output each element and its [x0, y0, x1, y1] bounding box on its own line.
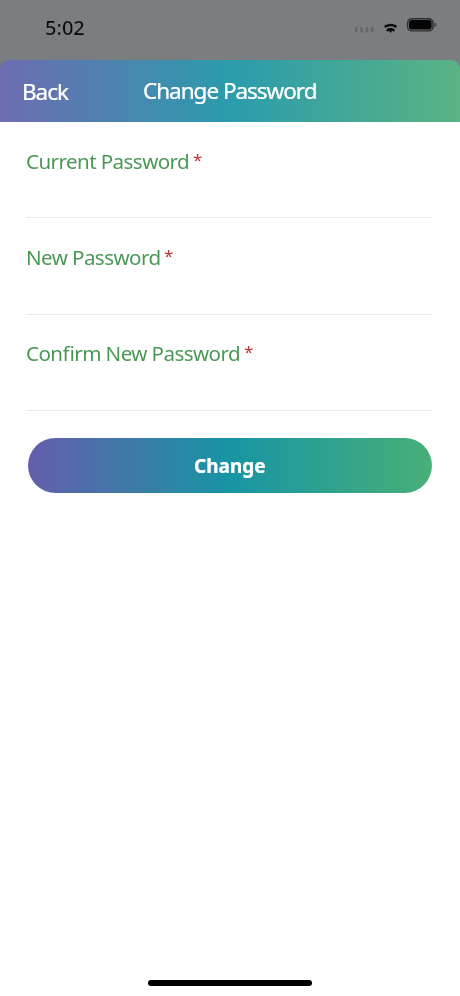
- other: Wi-Fi: [381, 17, 401, 33]
- staticText: Confirm New Password: [26, 339, 241, 367]
- staticText: Current Password: [26, 147, 190, 175]
- other: Battery: [406, 17, 438, 33]
- staticText: New Password: [26, 243, 161, 271]
- staticText: 5:02: [45, 14, 85, 41]
- staticText: *: [193, 148, 203, 171]
- staticText: Change: [194, 453, 266, 479]
- button[interactable]: Back: [0, 66, 84, 117]
- other: Cellular signal: [355, 26, 376, 34]
- button[interactable]: Change: [28, 438, 432, 493]
- staticText: *: [164, 244, 174, 267]
- staticText: Change Password: [143, 75, 317, 106]
- staticText: *: [244, 340, 254, 363]
- staticText: Back: [22, 76, 68, 107]
